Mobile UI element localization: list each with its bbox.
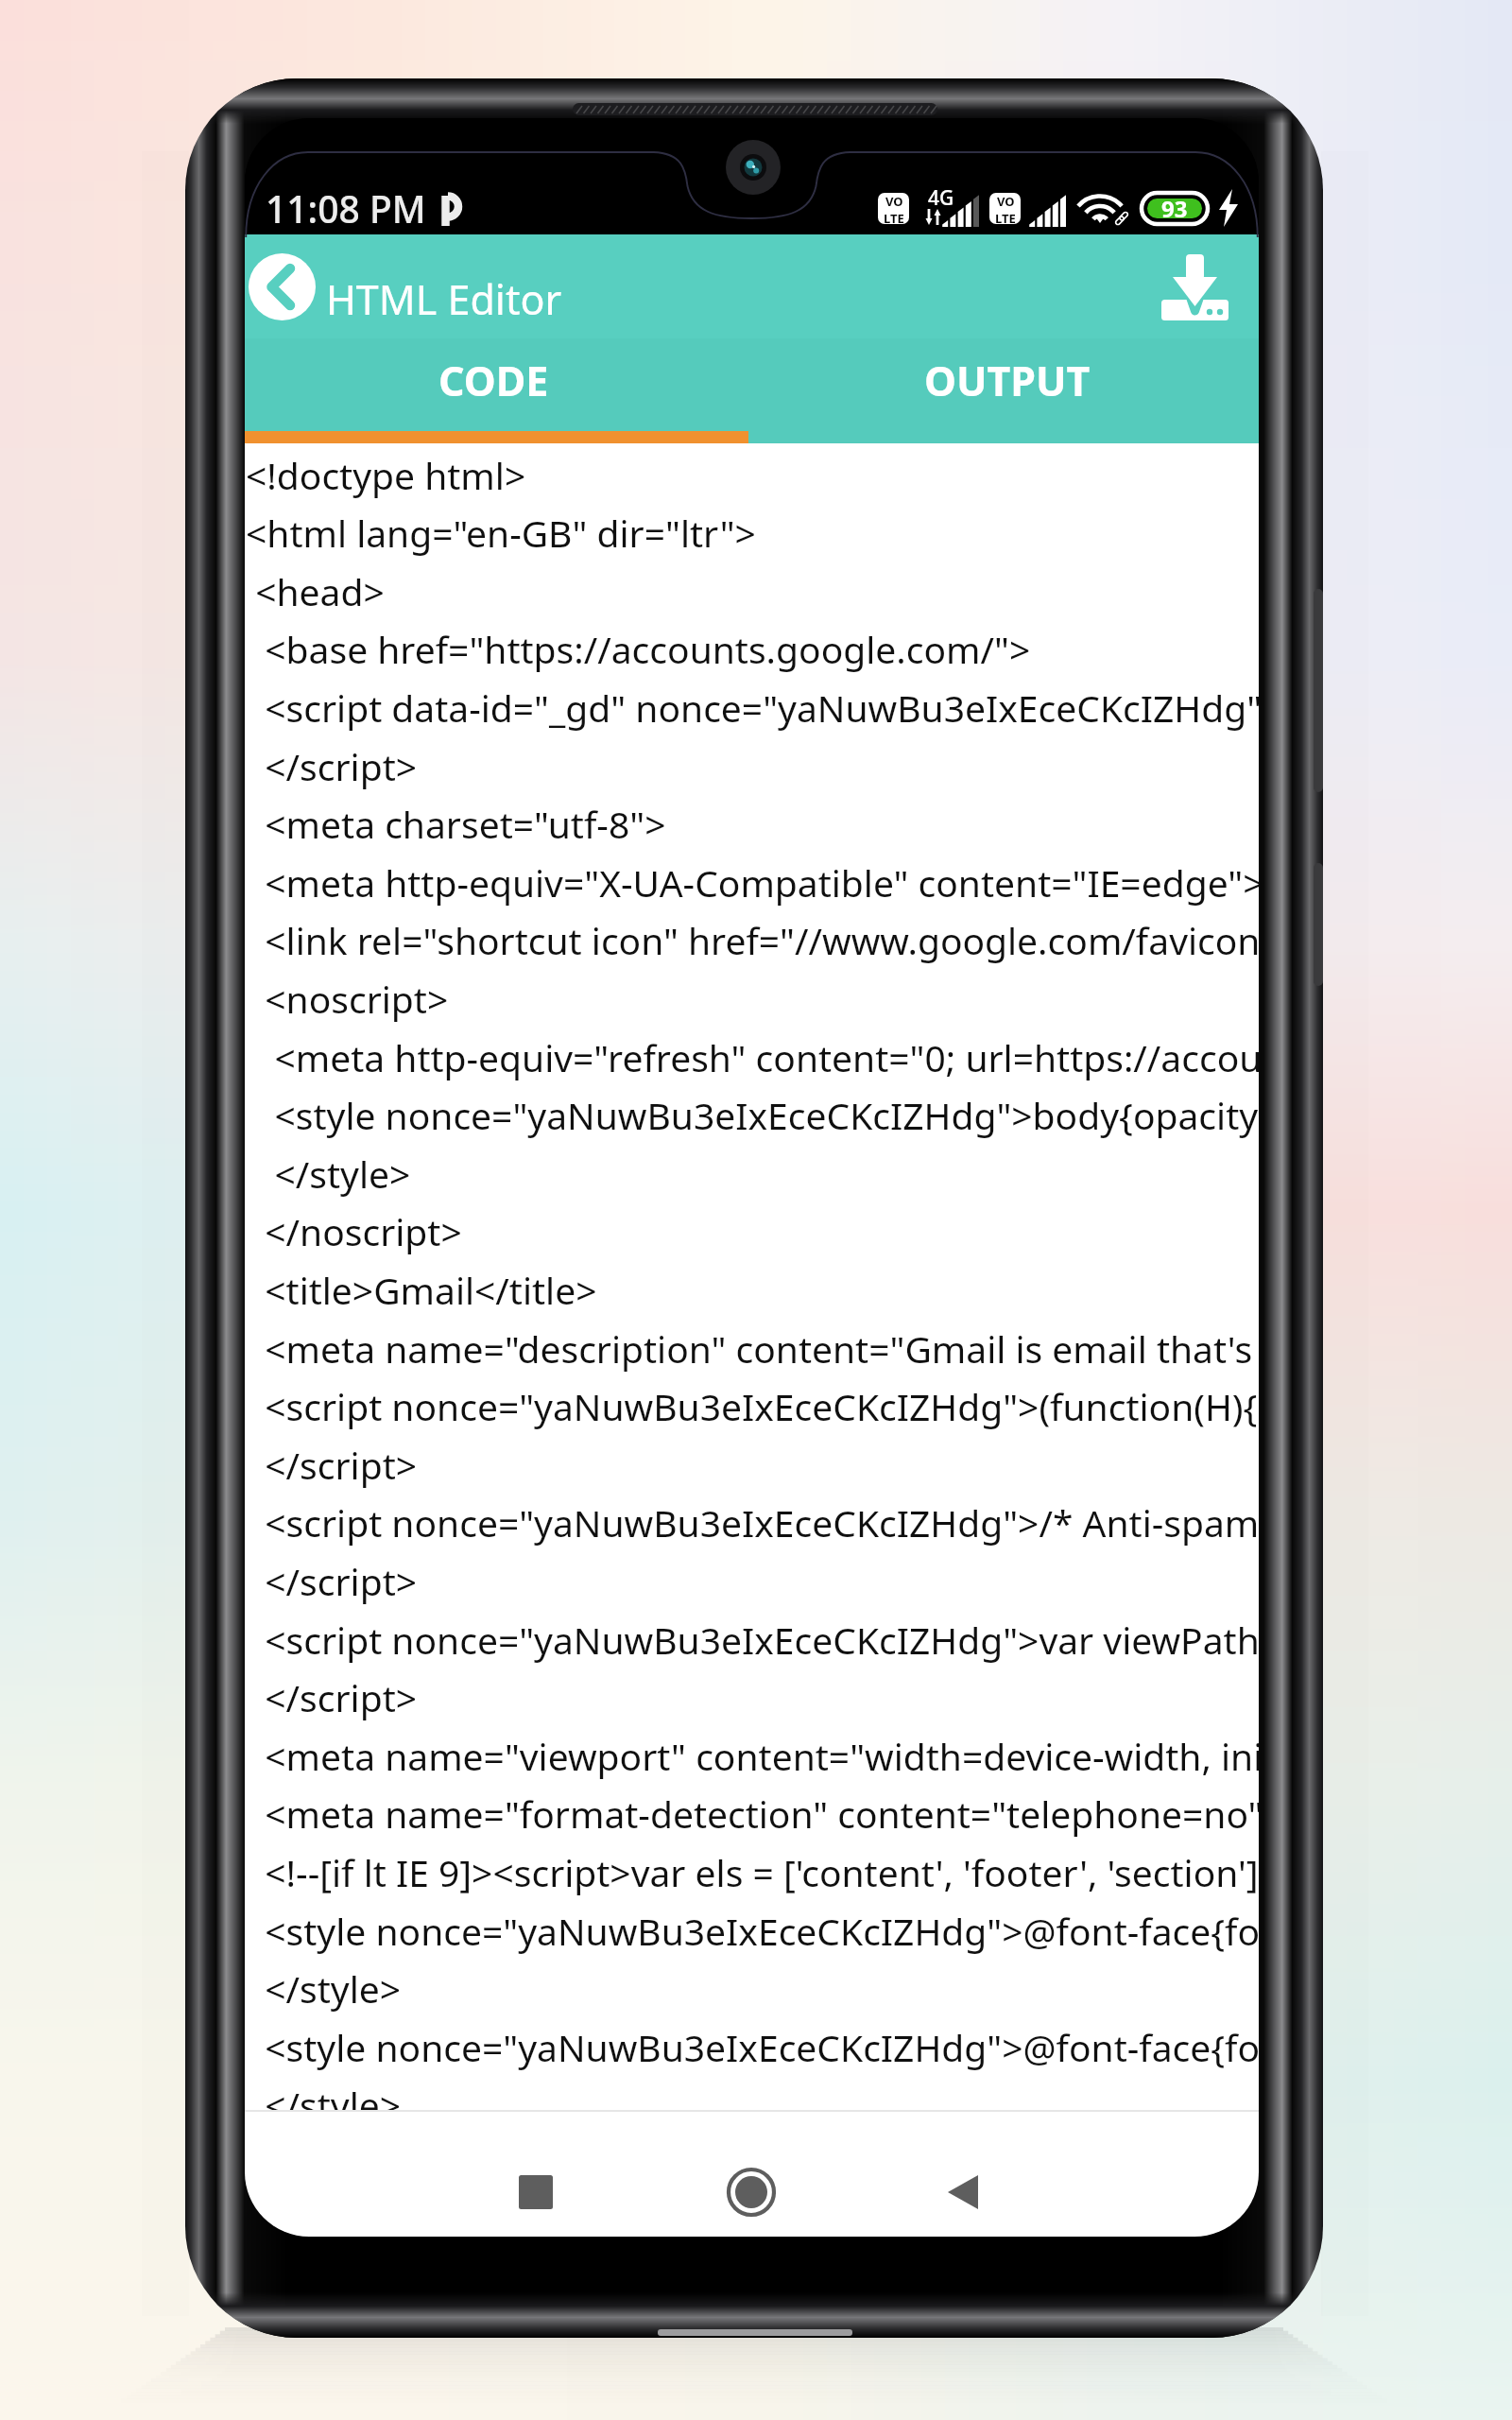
staticText: LTE bbox=[884, 210, 904, 224]
staticText: <script nonce="yaNuwBu3eIxEceCKcIZHdg">/… bbox=[246, 1497, 1259, 1547]
staticText: <base href="https://accounts.google.com/… bbox=[246, 624, 1031, 674]
staticText: CODE bbox=[438, 353, 549, 408]
button[interactable]: Back bbox=[920, 2157, 1005, 2227]
staticText: </style> bbox=[246, 2080, 402, 2130]
staticText: <noscript> bbox=[246, 974, 449, 1024]
staticText: HTML Editor bbox=[326, 271, 562, 327]
staticText: 4G bbox=[928, 184, 954, 212]
staticText: <title>Gmail</title> bbox=[246, 1265, 597, 1315]
staticText: <script data-id="_gd" nonce="yaNuwBu3eIx… bbox=[246, 683, 1259, 733]
button[interactable]: CODE bbox=[245, 338, 751, 443]
staticText: <html lang="en-GB" dir="ltr"> bbox=[246, 508, 756, 558]
staticText: <style nonce="yaNuwBu3eIxEceCKcIZHdg">@f… bbox=[246, 1906, 1259, 1956]
staticText: <meta name="format-detection" content="t… bbox=[246, 1789, 1259, 1839]
staticText: </style> bbox=[246, 1149, 411, 1199]
staticText: <style nonce="yaNuwBu3eIxEceCKcIZHdg">@f… bbox=[246, 2022, 1259, 2072]
button[interactable]: OUTPUT bbox=[751, 338, 1259, 443]
staticText: <meta charset="utf-8"> bbox=[246, 799, 666, 849]
staticText: </script> bbox=[246, 741, 418, 791]
staticText: <meta http-equiv="refresh" content="0; u… bbox=[246, 1032, 1259, 1082]
staticText: <link rel="shortcut icon" href="//www.go… bbox=[246, 915, 1259, 965]
staticText: <meta http-equiv="X-UA-Compatible" conte… bbox=[246, 857, 1259, 907]
staticText: <meta name="viewport" content="width=dev… bbox=[246, 1731, 1259, 1781]
staticText: <!doctype html> bbox=[246, 450, 526, 500]
staticText: <style nonce="yaNuwBu3eIxEceCKcIZHdg">bo… bbox=[246, 1090, 1259, 1140]
staticText: <!--[if lt IE 9]><script>var els = ['con… bbox=[246, 1847, 1259, 1897]
staticText: </script> bbox=[246, 1556, 418, 1606]
staticText: <meta name="description" content="Gmail … bbox=[246, 1323, 1259, 1374]
staticText: <script nonce="yaNuwBu3eIxEceCKcIZHdg">v… bbox=[246, 1615, 1259, 1665]
button[interactable]: Back bbox=[245, 243, 325, 330]
staticText: OUTPUT bbox=[924, 353, 1091, 408]
staticText: <script nonce="yaNuwBu3eIxEceCKcIZHdg">(… bbox=[246, 1381, 1259, 1431]
button[interactable]: Home bbox=[709, 2157, 794, 2227]
staticText: LTE bbox=[995, 210, 1016, 224]
button[interactable]: Recent apps bbox=[493, 2157, 578, 2227]
staticText: </noscript> bbox=[246, 1206, 462, 1256]
staticText: <head> bbox=[246, 566, 385, 616]
button[interactable]: Download bbox=[1143, 235, 1246, 339]
staticText: </script> bbox=[246, 1672, 418, 1722]
staticText: VO bbox=[997, 193, 1015, 210]
staticText: 11:08 PM bbox=[266, 183, 426, 233]
staticText: VO bbox=[885, 193, 903, 210]
staticText: </style> bbox=[246, 1963, 402, 2014]
staticText: </script> bbox=[246, 1440, 418, 1490]
staticText: 93 bbox=[1161, 193, 1188, 224]
